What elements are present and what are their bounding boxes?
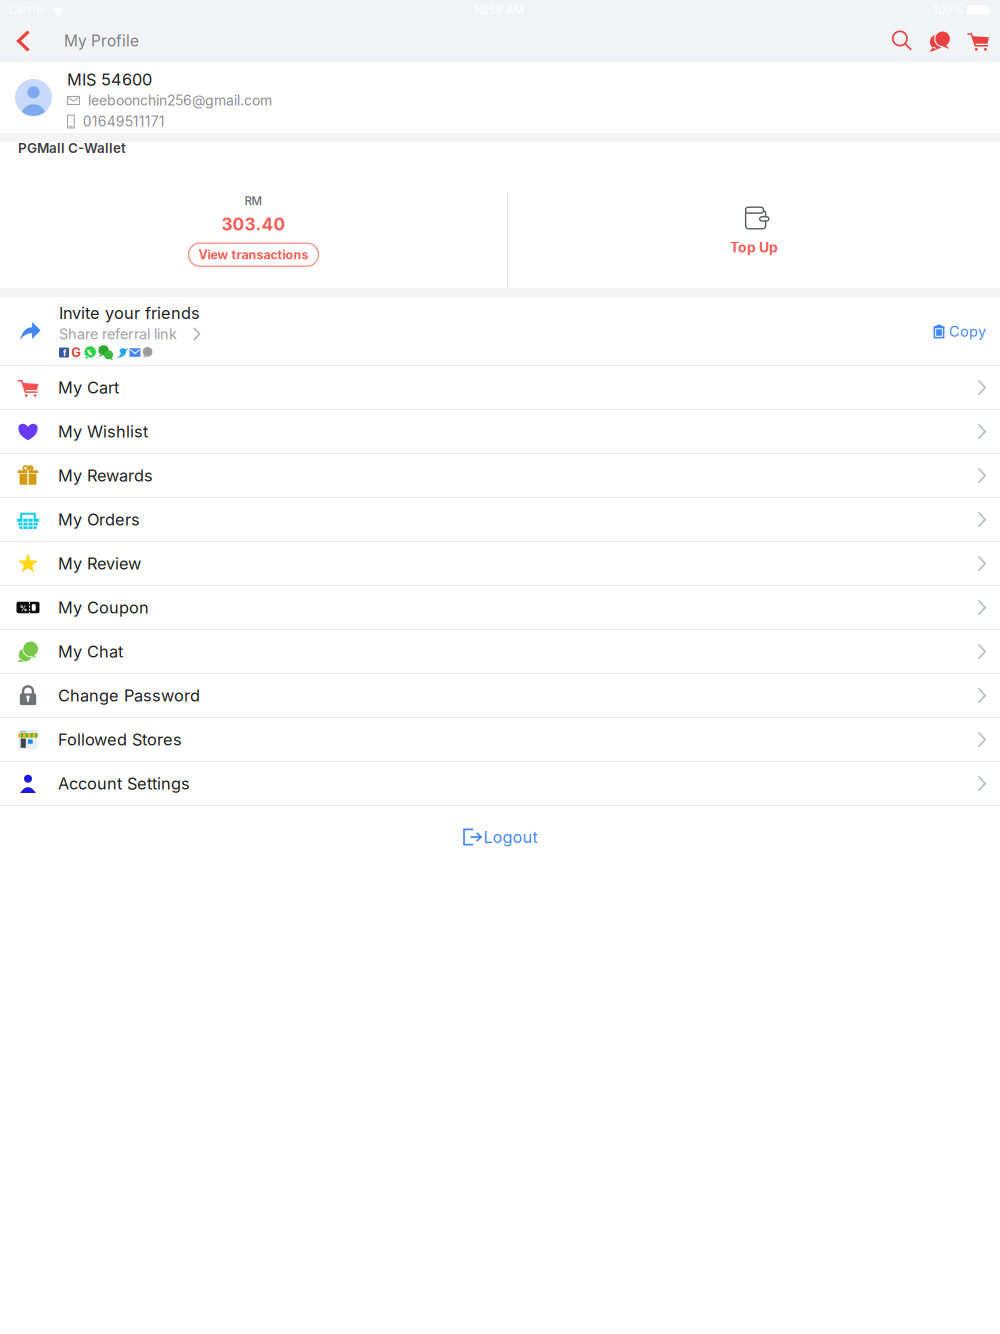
button[interactable]: View transactions xyxy=(188,243,318,266)
staticText: Invite your friends xyxy=(59,303,200,323)
staticText: RM xyxy=(244,194,262,208)
button[interactable]: My Orders xyxy=(0,498,1000,542)
button[interactable]: My Wishlist xyxy=(0,410,1000,454)
button[interactable]: My Cart xyxy=(0,366,1000,410)
staticText: Carrier xyxy=(9,3,47,17)
button[interactable]: My Chat xyxy=(0,630,1000,674)
button[interactable]: Back xyxy=(0,20,47,62)
staticText: 100% xyxy=(933,3,963,17)
staticText: My Rewards xyxy=(58,466,153,485)
staticText: MIS 54600 xyxy=(67,70,152,89)
button[interactable]: Logout xyxy=(0,806,1000,868)
button[interactable]: Cart xyxy=(959,20,1000,62)
button[interactable]: Followed Stores xyxy=(0,718,1000,762)
staticText: My Coupon xyxy=(58,598,149,617)
staticText: My Orders xyxy=(58,510,140,529)
staticText: My Profile xyxy=(64,32,139,50)
button[interactable]: My Rewards xyxy=(0,454,1000,498)
staticText: leeboonchin256@gmail.com xyxy=(88,92,272,109)
staticText: My Chat xyxy=(58,642,123,661)
staticText: 10:59 AM xyxy=(473,3,524,17)
staticText: f xyxy=(63,348,66,358)
staticText: View transactions xyxy=(198,247,308,262)
staticText: Followed Stores xyxy=(58,730,182,749)
button[interactable]: My Review xyxy=(0,542,1000,586)
staticText: PGMall C-Wallet xyxy=(18,140,126,156)
staticText: My Wishlist xyxy=(58,422,148,441)
staticText: Logout xyxy=(483,827,537,847)
button[interactable]: Search xyxy=(883,20,921,62)
staticText: Copy xyxy=(949,323,986,340)
staticText: Top Up xyxy=(730,239,778,256)
staticText: My Review xyxy=(58,554,141,573)
staticText: Change Password xyxy=(58,686,200,705)
staticText: G xyxy=(71,345,81,360)
staticText: My Cart xyxy=(58,378,119,397)
button[interactable]: % xyxy=(0,586,1000,630)
staticText: 303.40 xyxy=(221,214,285,235)
staticText: 01649511171 xyxy=(83,113,165,130)
button[interactable]: Change Password xyxy=(0,674,1000,718)
button[interactable]: Messages xyxy=(921,20,959,62)
staticText: % xyxy=(20,604,28,613)
button[interactable]: Account Settings xyxy=(0,762,1000,806)
staticText: Account Settings xyxy=(58,774,190,793)
button[interactable]: Invite your friends xyxy=(0,297,1000,366)
staticText: Share referral link xyxy=(59,325,177,343)
button[interactable]: Top Up xyxy=(508,193,1000,303)
